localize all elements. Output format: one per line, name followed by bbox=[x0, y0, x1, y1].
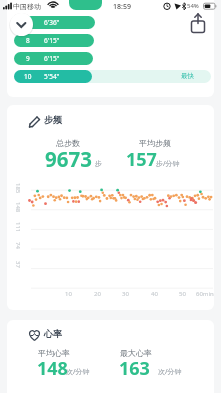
button[interactable] bbox=[9, 12, 34, 37]
staticText: 74 bbox=[14, 242, 22, 256]
button[interactable] bbox=[186, 12, 211, 37]
staticText: 163 bbox=[119, 356, 150, 381]
staticText: 30 bbox=[122, 290, 129, 298]
staticText: 6'36" bbox=[44, 18, 60, 27]
staticText: 10 bbox=[24, 72, 32, 81]
staticText: 54% bbox=[187, 2, 199, 10]
staticText: 185 bbox=[14, 183, 22, 197]
staticText: 最快 bbox=[181, 72, 194, 80]
staticText: 111 bbox=[14, 222, 22, 236]
staticText: 6'15" bbox=[44, 36, 60, 45]
staticText: 6'15" bbox=[44, 54, 60, 63]
staticText: 心率 bbox=[44, 328, 62, 339]
staticText: 7 bbox=[26, 18, 30, 27]
staticText: 步/分钟 bbox=[156, 159, 180, 169]
staticText: 60min bbox=[196, 290, 214, 298]
staticText: 8 bbox=[26, 36, 30, 45]
button[interactable] bbox=[14, 34, 94, 47]
staticText: 18:59 bbox=[113, 2, 131, 12]
staticText: 20 bbox=[94, 290, 101, 298]
staticText: 40 bbox=[151, 290, 158, 298]
staticText: 步频 bbox=[44, 114, 62, 125]
button[interactable] bbox=[14, 52, 93, 65]
staticText: 次/分钟 bbox=[66, 367, 90, 377]
staticText: 157 bbox=[126, 147, 157, 172]
staticText: 9 bbox=[26, 54, 30, 63]
staticText: 中国移动 bbox=[13, 2, 41, 11]
staticText: 平均心率 bbox=[38, 348, 70, 358]
staticText: 平均步频 bbox=[139, 138, 171, 148]
staticText: 10 bbox=[65, 290, 72, 298]
staticText: 5'54" bbox=[44, 72, 60, 81]
staticText: 148 bbox=[37, 356, 68, 381]
staticText: 总步数 bbox=[56, 138, 80, 148]
button[interactable] bbox=[14, 70, 211, 83]
staticText: 最大心率 bbox=[120, 348, 152, 358]
button[interactable] bbox=[14, 16, 95, 29]
staticText: 148 bbox=[14, 202, 22, 216]
staticText: 次/分钟 bbox=[158, 367, 182, 377]
staticText: 9673 bbox=[45, 145, 92, 173]
staticText: 50 bbox=[179, 290, 186, 298]
staticText: 37 bbox=[14, 261, 22, 275]
staticText: 步 bbox=[95, 159, 102, 168]
